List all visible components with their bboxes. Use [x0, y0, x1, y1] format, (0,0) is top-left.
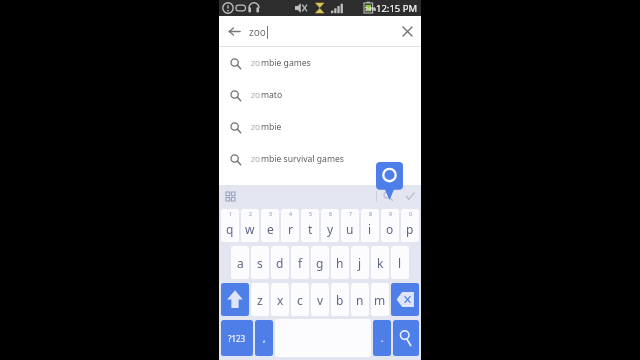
- button[interactable]: b: [331, 283, 349, 316]
- button[interactable]: 0: [401, 209, 419, 242]
- button[interactable]: 9: [381, 209, 399, 242]
- button[interactable]: a: [231, 246, 249, 279]
- button[interactable]: s: [251, 246, 269, 279]
- staticText: 4: [289, 210, 292, 217]
- button[interactable]: j: [351, 246, 369, 279]
- button[interactable]: 2: [241, 209, 259, 242]
- staticText: 9: [389, 210, 392, 217]
- staticText: ?123: [228, 333, 246, 344]
- button[interactable]: Back: [219, 16, 249, 47]
- button[interactable]: 3: [261, 209, 279, 242]
- button[interactable]: 6: [321, 209, 339, 242]
- button[interactable]: zo: [219, 111, 421, 143]
- staticText: zo: [251, 57, 261, 69]
- button[interactable]: Search: [377, 185, 399, 207]
- staticText: zo: [251, 121, 261, 133]
- staticText: k: [377, 255, 384, 271]
- button[interactable]: Clear query: [393, 16, 421, 47]
- button[interactable]: Keyboard options: [219, 185, 241, 207]
- staticText: s: [257, 255, 263, 271]
- button[interactable]: d: [271, 246, 289, 279]
- staticText: j: [358, 255, 362, 271]
- button[interactable]: 7: [341, 209, 359, 242]
- staticText: zo: [251, 89, 261, 101]
- staticText: mbie: [261, 121, 282, 133]
- staticText: g: [316, 255, 324, 271]
- staticText: 12:15 PM: [376, 2, 418, 15]
- staticText: z: [257, 292, 263, 308]
- staticText: n: [356, 292, 364, 308]
- button[interactable]: 5: [301, 209, 319, 242]
- staticText: i: [368, 221, 372, 237]
- staticText: b: [336, 292, 344, 308]
- button[interactable]: c: [291, 283, 309, 316]
- button[interactable]: h: [331, 246, 349, 279]
- staticText: zoo: [249, 25, 266, 39]
- button[interactable]: Backspace: [391, 283, 419, 316]
- staticText: mbie survival games: [261, 153, 344, 165]
- button[interactable]: v: [311, 283, 329, 316]
- staticText: 0: [409, 210, 412, 217]
- staticText: r: [288, 221, 293, 237]
- staticText: u: [346, 221, 354, 237]
- staticText: ,: [263, 332, 266, 344]
- staticText: 1: [229, 210, 232, 217]
- button[interactable]: zo: [219, 143, 421, 175]
- button[interactable]: ,: [255, 320, 273, 356]
- button[interactable]: zo: [219, 47, 421, 79]
- button[interactable]: Search: [393, 320, 419, 356]
- button[interactable]: z: [251, 283, 269, 316]
- button[interactable]: 1: [221, 209, 239, 242]
- staticText: 5: [309, 210, 312, 217]
- staticText: c: [297, 292, 303, 308]
- staticText: 2: [249, 210, 252, 217]
- staticText: 6: [329, 210, 332, 217]
- staticText: x: [277, 292, 284, 308]
- staticText: e: [267, 221, 274, 237]
- staticText: d: [276, 255, 284, 271]
- staticText: p: [406, 221, 414, 237]
- button[interactable]: .: [373, 320, 391, 356]
- staticText: 7: [349, 210, 352, 217]
- button[interactable]: k: [371, 246, 389, 279]
- button[interactable]: g: [311, 246, 329, 279]
- staticText: mato: [261, 89, 283, 101]
- staticText: zo: [251, 153, 261, 165]
- staticText: 8: [369, 210, 372, 217]
- button[interactable]: l: [391, 246, 409, 279]
- staticText: .: [381, 332, 384, 344]
- staticText: mbie games: [261, 57, 311, 69]
- button[interactable]: m: [371, 283, 389, 316]
- staticText: a: [237, 255, 244, 271]
- staticText: 74%: [365, 5, 377, 12]
- staticText: h: [336, 255, 344, 271]
- button[interactable]: Done: [399, 185, 421, 207]
- button[interactable]: f: [291, 246, 309, 279]
- staticText: v: [317, 292, 324, 308]
- button[interactable]: zo: [219, 79, 421, 111]
- staticText: 3: [269, 210, 272, 217]
- staticText: q: [226, 221, 234, 237]
- button[interactable]: 8: [361, 209, 379, 242]
- staticText: w: [245, 221, 255, 237]
- staticText: o: [386, 221, 394, 237]
- staticText: m: [374, 292, 386, 308]
- button[interactable]: n: [351, 283, 369, 316]
- button[interactable]: ?123: [221, 320, 253, 356]
- button[interactable]: Shift: [221, 283, 249, 316]
- button[interactable]: x: [271, 283, 289, 316]
- staticText: t: [308, 221, 313, 237]
- staticText: l: [398, 255, 402, 271]
- staticText: y: [327, 221, 334, 237]
- staticText: f: [298, 255, 303, 271]
- button[interactable]: 4: [281, 209, 299, 242]
